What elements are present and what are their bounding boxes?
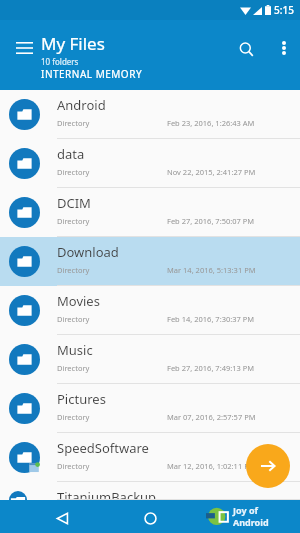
staticText: Pictures: [57, 390, 106, 408]
staticText: TitaniumBackup: [57, 488, 157, 506]
staticText: data: [57, 145, 85, 163]
staticText: 10 folders: [41, 56, 79, 67]
button[interactable]: Search: [233, 36, 259, 62]
staticText: Feb 23, 2016, 1:26:43 AM: [167, 118, 255, 128]
staticText: Joy of: [233, 504, 259, 516]
staticText: Download: [57, 243, 119, 261]
staticText: Directory: [57, 216, 90, 226]
staticText: Mar 12, 2016, 1:02:11 PM: [167, 461, 256, 471]
staticText: My Files: [41, 32, 105, 55]
staticText: 5:15: [274, 3, 294, 17]
button[interactable]: Android: [0, 90, 300, 139]
staticText: Mar 14, 2016, 5:13:31 PM: [167, 265, 256, 275]
staticText: Directory: [57, 461, 90, 471]
button[interactable]: Next: [246, 444, 290, 488]
staticText: Movies: [57, 292, 100, 310]
staticText: Directory: [57, 314, 90, 324]
staticText: Directory: [57, 412, 90, 422]
staticText: INTERNAL MEMORY: [41, 67, 143, 81]
button[interactable]: data: [0, 139, 300, 188]
staticText: DCIM: [57, 194, 91, 212]
staticText: Music: [57, 341, 93, 359]
button[interactable]: SpeedSoftware: [0, 433, 300, 482]
staticText: Directory: [57, 167, 90, 177]
button[interactable]: Movies: [0, 286, 300, 335]
button[interactable]: Home: [140, 508, 160, 528]
staticText: Directory: [57, 510, 90, 520]
staticText: Android: [233, 516, 269, 528]
button[interactable]: Download: [0, 237, 300, 286]
staticText: Feb 27, 2016, 7:50:07 PM: [167, 216, 255, 226]
staticText: Directory: [57, 265, 90, 275]
button[interactable]: More options: [272, 36, 296, 60]
staticText: Nov 22, 2015, 2:41:27 PM: [167, 167, 256, 177]
staticText: Mar 02, 2016, 1:23:01 PM: [167, 510, 256, 520]
staticText: Mar 07, 2016, 2:57:57 PM: [167, 412, 256, 422]
button[interactable]: Back: [52, 508, 72, 528]
staticText: Android: [57, 96, 106, 114]
button[interactable]: Pictures: [0, 384, 300, 433]
button[interactable]: Open navigation menu: [10, 34, 38, 62]
button[interactable]: TitaniumBackup: [0, 482, 300, 500]
button[interactable]: Music: [0, 335, 300, 384]
staticText: Directory: [57, 363, 90, 373]
staticText: Directory: [57, 118, 90, 128]
staticText: SpeedSoftware: [57, 439, 149, 457]
button[interactable]: DCIM: [0, 188, 300, 237]
staticText: Feb 14, 2016, 7:30:37 PM: [167, 314, 255, 324]
staticText: Feb 27, 2016, 7:49:13 PM: [167, 363, 255, 373]
